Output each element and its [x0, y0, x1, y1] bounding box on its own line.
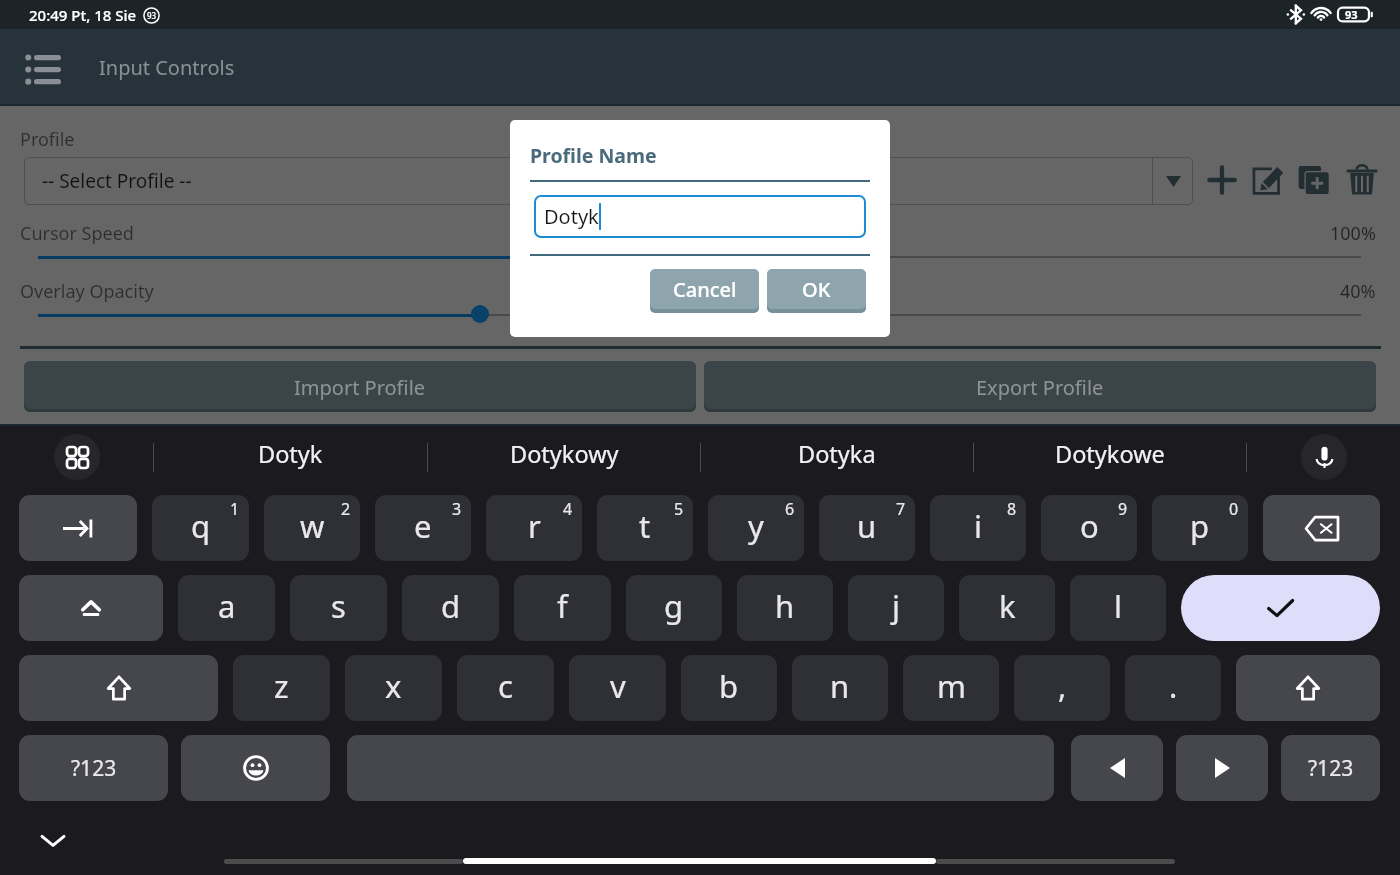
- button[interactable]: Dotykowe: [974, 426, 1246, 488]
- button[interactable]: ?123: [19, 735, 168, 801]
- button[interactable]: OK: [767, 269, 866, 309]
- staticText: z: [274, 665, 289, 707]
- button[interactable]: Backspace: [1263, 495, 1380, 561]
- staticText: Dotyk: [258, 438, 323, 470]
- staticText: Export Profile: [976, 374, 1104, 401]
- button[interactable]: Caps lock: [19, 575, 163, 641]
- staticText: u: [857, 505, 877, 547]
- button[interactable]: z: [233, 655, 330, 721]
- button[interactable]: Menu: [8, 34, 78, 100]
- button[interactable]: ,: [1014, 655, 1110, 721]
- button[interactable]: Delete profile: [1339, 155, 1385, 205]
- button[interactable]: Edit profile: [1245, 155, 1291, 205]
- button[interactable]: Import Profile: [24, 361, 696, 409]
- button[interactable]: Export Profile: [704, 361, 1376, 409]
- button[interactable]: p: [1152, 495, 1248, 561]
- staticText: 6: [785, 498, 795, 520]
- button[interactable]: i: [930, 495, 1026, 561]
- staticText: e: [414, 505, 432, 547]
- button[interactable]: Dotykowy: [428, 426, 700, 488]
- button[interactable]: y: [708, 495, 804, 561]
- button[interactable]: b: [681, 655, 777, 721]
- button[interactable]: Shift: [19, 655, 218, 721]
- staticText: ?123: [1308, 754, 1354, 783]
- staticText: i: [974, 505, 982, 547]
- staticText: Profile: [20, 127, 75, 152]
- staticText: k: [999, 585, 1016, 627]
- button[interactable]: l: [1070, 575, 1166, 641]
- button[interactable]: -- Select Profile --: [24, 157, 1193, 205]
- staticText: Dotykowe: [1055, 438, 1165, 470]
- staticText: 93: [147, 10, 157, 21]
- staticText: m: [937, 665, 966, 707]
- staticText: p: [1190, 505, 1210, 547]
- staticText: 7: [896, 498, 906, 520]
- button[interactable]: Move cursor right: [1176, 735, 1268, 801]
- button[interactable]: c: [457, 655, 554, 721]
- button[interactable]: r: [486, 495, 582, 561]
- staticText: Profile Name: [530, 142, 657, 169]
- button[interactable]: v: [569, 655, 666, 721]
- button[interactable]: n: [792, 655, 888, 721]
- staticText: 4: [563, 498, 573, 520]
- staticText: f: [557, 585, 568, 627]
- button[interactable]: Hide keyboard: [33, 820, 73, 860]
- button[interactable]: j: [848, 575, 944, 641]
- button[interactable]: Enter: [1181, 575, 1380, 641]
- staticText: ,: [1058, 665, 1067, 707]
- staticText: .: [1169, 665, 1178, 707]
- staticText: 5: [674, 498, 684, 520]
- staticText: j: [892, 585, 900, 627]
- button[interactable]: f: [514, 575, 611, 641]
- staticText: l: [1114, 585, 1122, 627]
- staticText: a: [218, 585, 236, 627]
- button[interactable]: m: [903, 655, 999, 721]
- staticText: Import Profile: [294, 374, 426, 401]
- button[interactable]: Duplicate profile: [1291, 155, 1337, 205]
- button[interactable]: Move cursor left: [1071, 735, 1163, 801]
- button[interactable]: Keyboard options: [54, 434, 100, 480]
- staticText: b: [719, 665, 739, 707]
- staticText: 2: [341, 498, 351, 520]
- button[interactable]: Dotyk: [154, 426, 427, 488]
- button[interactable]: Shift: [1236, 655, 1380, 721]
- staticText: s: [331, 585, 346, 627]
- button[interactable]: q: [152, 495, 249, 561]
- button[interactable]: s: [290, 575, 387, 641]
- staticText: x: [385, 665, 402, 707]
- staticText: t: [639, 505, 651, 547]
- button[interactable]: x: [345, 655, 442, 721]
- button[interactable]: .: [1125, 655, 1221, 721]
- button[interactable]: w: [264, 495, 360, 561]
- button[interactable]: Cancel: [650, 269, 759, 309]
- button[interactable]: d: [402, 575, 499, 641]
- staticText: Cancel: [673, 276, 737, 303]
- staticText: y: [748, 505, 764, 547]
- button[interactable]: o: [1041, 495, 1137, 561]
- staticText: 9: [1118, 498, 1128, 520]
- staticText: -- Select Profile --: [42, 168, 192, 194]
- button[interactable]: u: [819, 495, 915, 561]
- button[interactable]: Tab: [19, 495, 137, 561]
- button[interactable]: a: [178, 575, 275, 641]
- button[interactable]: ?123: [1281, 735, 1380, 801]
- staticText: 8: [1007, 498, 1017, 520]
- staticText: d: [441, 585, 461, 627]
- staticText: w: [300, 505, 325, 547]
- button[interactable]: Add profile: [1199, 155, 1245, 205]
- button[interactable]: Dotyka: [701, 426, 973, 488]
- staticText: 0: [1229, 498, 1239, 520]
- button[interactable]: e: [375, 495, 471, 561]
- staticText: c: [498, 665, 513, 707]
- staticText: o: [1080, 505, 1099, 547]
- button[interactable]: t: [597, 495, 693, 561]
- staticText: 3: [452, 498, 462, 520]
- button[interactable]: k: [959, 575, 1055, 641]
- staticText: 100%: [1330, 221, 1376, 246]
- button[interactable]: Emoji: [181, 735, 330, 801]
- button[interactable]: Voice input: [1301, 434, 1347, 480]
- button[interactable]: h: [737, 575, 833, 641]
- staticText: Cursor Speed: [20, 221, 134, 246]
- button[interactable]: g: [626, 575, 722, 641]
